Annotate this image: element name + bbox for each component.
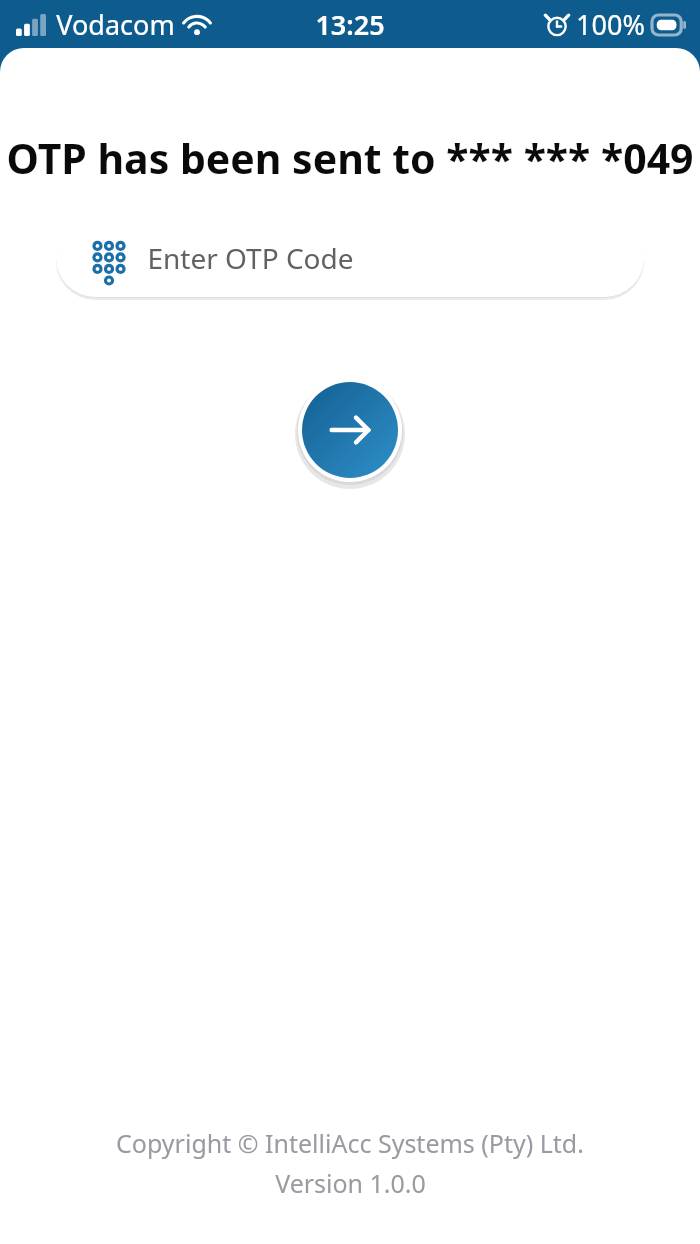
staticText: Copyright © IntelliAcc Systems (Pty) Ltd… bbox=[116, 1126, 584, 1160]
staticText: 13:25 bbox=[315, 6, 385, 43]
staticText: OTP has been sent to *** *** *049 bbox=[6, 130, 694, 186]
staticText: Vodacom bbox=[56, 6, 175, 43]
staticText: 100% bbox=[576, 6, 645, 43]
staticText: Version 1.0.0 bbox=[275, 1166, 426, 1200]
button[interactable]: Submit OTP bbox=[302, 382, 398, 478]
button[interactable]: Enter OTP Code bbox=[56, 219, 644, 297]
staticText: Enter OTP Code bbox=[147, 239, 354, 277]
